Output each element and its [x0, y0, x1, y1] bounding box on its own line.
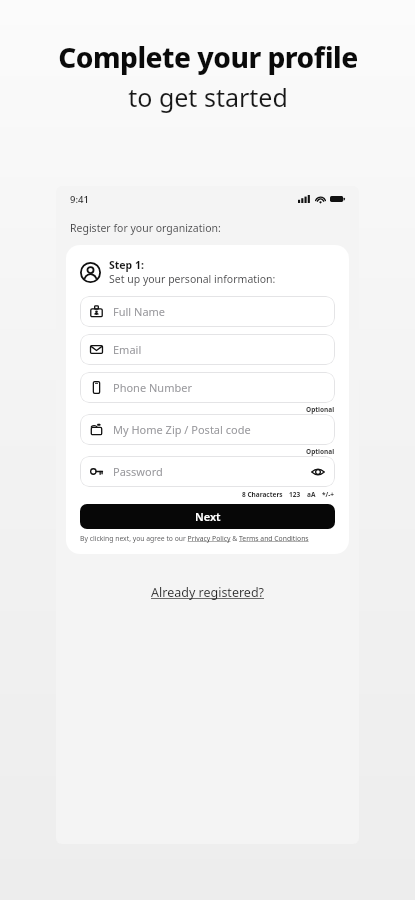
- staticText: By clicking next, you agree to our Priva…: [80, 534, 309, 543]
- staticText: Optional: [306, 405, 335, 414]
- staticText: */-+: [322, 490, 335, 499]
- button[interactable]: Show password: [311, 465, 325, 479]
- staticText: Next: [195, 509, 221, 524]
- staticText: Set up your personal information:: [109, 272, 276, 286]
- staticText: My Home Zip / Postal code: [113, 422, 251, 437]
- staticText: to get started: [128, 80, 288, 114]
- button[interactable]: Full Name: [80, 296, 335, 327]
- staticText: Email: [113, 342, 142, 357]
- staticText: Phone Number: [113, 380, 192, 395]
- staticText: Optional: [306, 447, 335, 456]
- button[interactable]: Email: [80, 334, 335, 365]
- staticText: aA: [307, 490, 316, 499]
- staticText: Already registered?: [151, 584, 265, 601]
- button[interactable]: Already registered?: [147, 580, 269, 605]
- button[interactable]: My Home Zip / Postal code: [80, 414, 335, 445]
- button[interactable]: Phone Number: [80, 372, 335, 403]
- button[interactable]: Password: [80, 456, 335, 487]
- staticText: Register for your organization:: [70, 221, 221, 235]
- staticText: Step 1:: [109, 258, 144, 272]
- staticText: Complete your profile: [58, 38, 358, 76]
- button[interactable]: Next: [80, 504, 335, 529]
- staticText: 9:41: [70, 193, 89, 206]
- staticText: Password: [113, 464, 163, 479]
- staticText: 123: [289, 490, 301, 499]
- staticText: Full Name: [113, 304, 166, 319]
- staticText: 8 Characters: [242, 490, 283, 499]
